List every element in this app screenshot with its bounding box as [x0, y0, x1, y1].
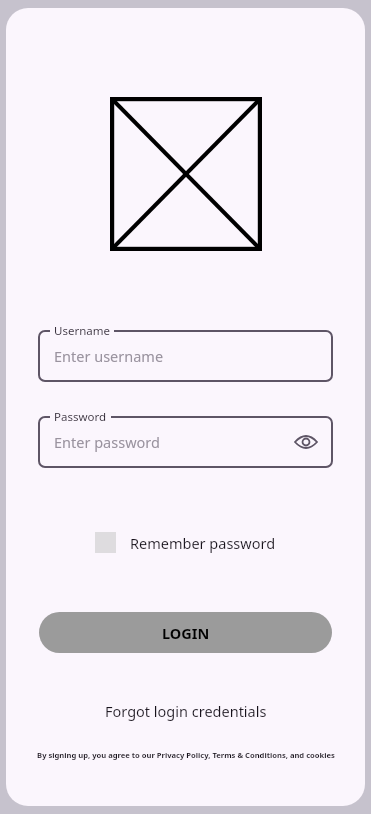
staticText: Enter username	[54, 346, 164, 366]
staticText: Forgot login credentials	[105, 701, 267, 721]
staticText: Remember password	[130, 533, 276, 553]
staticText: Password	[54, 409, 107, 425]
button[interactable]	[38, 330, 333, 382]
button[interactable]: Show password	[291, 427, 321, 457]
button[interactable]: LOGIN	[39, 612, 332, 653]
staticText: By signing up, you agree to our Privacy …	[37, 750, 335, 760]
button[interactable]	[38, 416, 333, 468]
staticText: Enter password	[54, 432, 160, 452]
button[interactable]: Remember password	[6, 532, 365, 553]
button[interactable]: Forgot login credentials	[97, 697, 275, 725]
staticText: Username	[54, 323, 110, 339]
staticText: LOGIN	[162, 623, 210, 643]
